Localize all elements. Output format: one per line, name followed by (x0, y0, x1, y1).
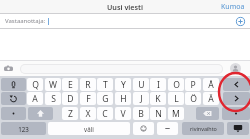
button[interactable]: B (133, 107, 149, 120)
button[interactable]: L (168, 92, 184, 105)
staticText: Z (68, 108, 73, 120)
button[interactable]: M (168, 107, 184, 120)
button[interactable]: I (150, 78, 166, 91)
button[interactable]: Undo (1, 92, 26, 105)
staticText: R (85, 79, 91, 91)
staticText: J (140, 93, 143, 105)
staticText: N (155, 108, 162, 120)
button[interactable]: Backspace (196, 107, 219, 120)
staticText: G (102, 93, 109, 105)
button[interactable]: Ä (203, 92, 219, 105)
button[interactable]: R (80, 78, 96, 91)
staticText: P (190, 79, 196, 91)
staticText: O (173, 79, 180, 91)
staticText: S (51, 93, 56, 105)
staticText: V (120, 108, 126, 120)
button[interactable]: J (133, 92, 149, 105)
staticText: T (103, 79, 108, 91)
button[interactable]: rivinvaihto (182, 122, 224, 135)
staticText: C (102, 108, 108, 120)
staticText: rivinvaihto (190, 125, 217, 132)
staticText: Å (208, 79, 214, 91)
staticText: väli (84, 125, 94, 133)
staticText: U (138, 79, 145, 91)
button[interactable]: V (115, 107, 131, 120)
button[interactable]: N (150, 107, 166, 120)
staticText: W (49, 79, 57, 91)
button[interactable]: Y (115, 78, 131, 91)
button[interactable]: Contact (230, 63, 241, 74)
staticText: Ä (208, 93, 214, 105)
button[interactable]: More (1, 107, 26, 120)
button[interactable]: Å (203, 78, 219, 91)
button[interactable]: Dictate (1, 78, 26, 91)
button[interactable]: Period (222, 107, 250, 120)
button[interactable]: A (27, 92, 43, 105)
button[interactable]: S (45, 92, 61, 105)
button[interactable]: G (97, 92, 113, 105)
button[interactable]: Previous field (223, 78, 250, 91)
button[interactable]: F (80, 92, 96, 105)
button[interactable]: C (97, 107, 113, 120)
button[interactable]: E (62, 78, 78, 91)
staticText: Vastaanottaja: (5, 17, 46, 25)
staticText: Q (32, 79, 39, 91)
staticText: B (138, 108, 144, 120)
button[interactable]: H (115, 92, 131, 105)
button[interactable]: Kumoa (221, 2, 245, 12)
button[interactable]: Q (27, 78, 43, 91)
button[interactable]: väli (48, 122, 130, 135)
button[interactable]: U (133, 78, 149, 91)
button[interactable]: W (45, 78, 61, 91)
staticText: I (157, 79, 160, 91)
staticText: Uusi viesti (107, 2, 144, 12)
staticText: Kumoa (221, 2, 245, 12)
staticText: 123 (18, 125, 29, 133)
button[interactable]: P (185, 78, 201, 91)
button[interactable]: Hide keyboard (227, 122, 249, 135)
button[interactable]: 123 (1, 122, 46, 135)
button[interactable]: Add contact (235, 16, 246, 27)
button[interactable]: Shift (28, 107, 53, 120)
button[interactable]: D (62, 92, 78, 105)
button[interactable]: Ö (185, 92, 201, 105)
staticText: H (120, 93, 127, 105)
button[interactable]: X (80, 107, 96, 120)
staticText: L (174, 93, 179, 105)
button[interactable]: Dash (157, 122, 178, 135)
button[interactable]: Camera (3, 63, 14, 74)
button[interactable]: T (97, 78, 113, 91)
staticText: M (172, 108, 180, 120)
staticText: E (68, 79, 73, 91)
button[interactable]: Z (62, 107, 78, 120)
staticText: A (32, 93, 38, 105)
button[interactable]: K (150, 92, 166, 105)
staticText: X (85, 108, 91, 120)
button[interactable]: Next field (223, 92, 250, 105)
button[interactable]: O (168, 78, 184, 91)
staticText: D (67, 93, 74, 105)
staticText: F (86, 93, 91, 105)
button[interactable]: Emoji (133, 122, 154, 135)
staticText: K (155, 93, 161, 105)
staticText: Ö (190, 93, 197, 105)
staticText: Y (121, 79, 126, 91)
